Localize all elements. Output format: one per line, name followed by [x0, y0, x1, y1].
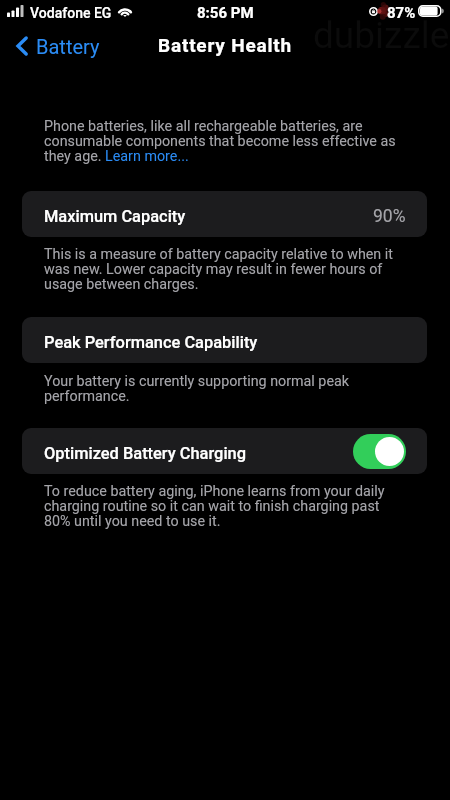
staticText: 8:56 PM	[197, 4, 254, 22]
button[interactable]: Maximum Capacity	[22, 191, 427, 237]
staticText: Peak Performance Capability	[44, 333, 258, 352]
button[interactable]: Optimized Battery Charging	[22, 428, 427, 474]
staticText: 90%	[373, 206, 406, 227]
staticText: Battery Health	[158, 34, 292, 56]
staticText: To reduce battery aging, iPhone learns f…	[44, 483, 385, 529]
button[interactable]: Peak Performance Capability	[22, 317, 427, 363]
staticText: dubizzle	[313, 14, 450, 57]
button[interactable]: Optimized Battery Charging toggle	[353, 434, 406, 469]
staticText: 87%	[387, 4, 416, 22]
button[interactable]: Battery	[6, 31, 108, 61]
staticText: This is a measure of battery capacity re…	[44, 246, 393, 292]
staticText: Maximum Capacity	[44, 207, 186, 226]
staticText: Phone batteries, like all rechargeable b…	[44, 118, 396, 164]
staticText: Your battery is currently supporting nor…	[44, 373, 349, 404]
staticText: Optimized Battery Charging	[44, 444, 247, 463]
staticText: Vodafone EG	[30, 5, 112, 21]
staticText: Battery	[36, 35, 100, 58]
